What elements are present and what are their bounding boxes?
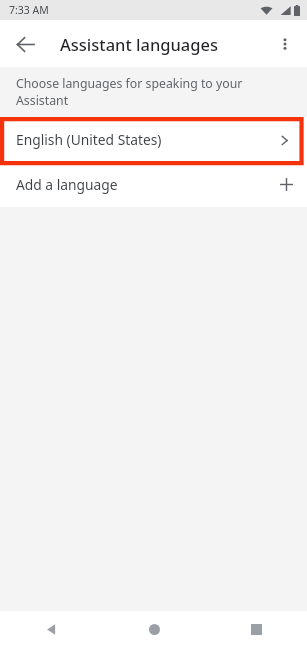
button[interactable]: English (United States) [0,117,307,162]
staticText: English (United States) [16,130,162,149]
staticText: 7:33 AM [9,3,49,17]
button[interactable]: More options [268,27,302,61]
button[interactable]: Back [0,611,103,648]
staticText: Add a language [16,175,118,194]
button[interactable]: Recent apps [205,611,307,648]
staticText: Assistant languages [60,33,219,55]
button[interactable]: Home [103,611,205,648]
button[interactable]: Add a language [0,162,307,207]
staticText: Choose languages for speaking to your As… [16,75,295,109]
button[interactable]: Back [8,27,42,61]
